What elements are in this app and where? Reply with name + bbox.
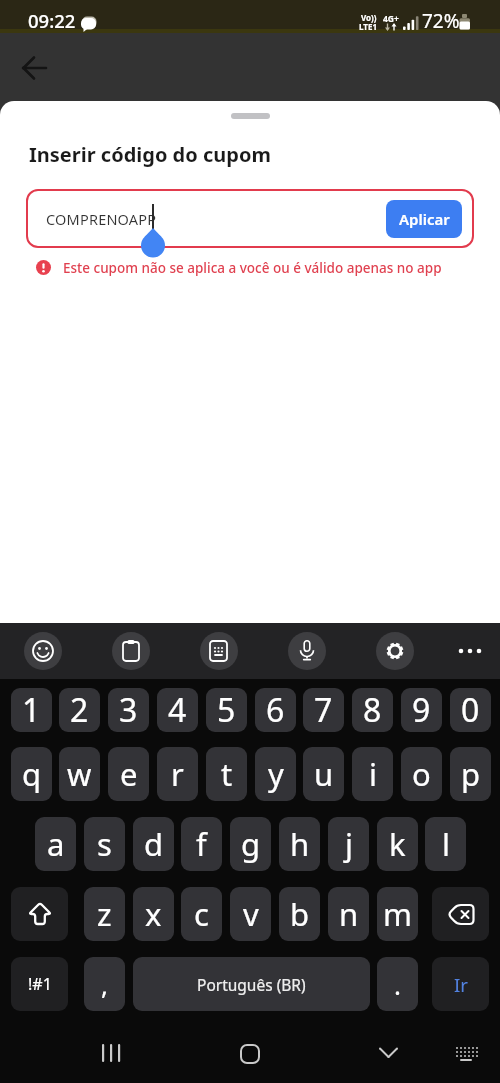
staticText: z	[97, 893, 112, 935]
staticText: o	[412, 753, 431, 795]
staticText: 5	[217, 688, 236, 732]
staticText: i	[369, 753, 377, 795]
staticText: h	[290, 823, 310, 865]
staticText: COMPRENOAPP	[46, 209, 157, 229]
staticText: p	[461, 753, 481, 795]
staticText: y	[268, 753, 284, 795]
staticText: 4G+	[383, 13, 399, 25]
staticText: 9	[412, 688, 431, 732]
staticText: 1	[22, 688, 41, 732]
staticText: n	[339, 893, 359, 935]
staticText: 72%	[422, 8, 460, 34]
staticText: Ir	[454, 972, 468, 997]
staticText: ,	[101, 967, 108, 1002]
staticText: 2	[70, 688, 89, 732]
staticText: 4	[168, 688, 187, 732]
staticText: Inserir código do cupom	[29, 141, 271, 168]
staticText: Vo))	[361, 12, 377, 23]
staticText: b	[290, 893, 310, 935]
staticText: 3	[119, 688, 138, 732]
staticText: LTE1	[359, 21, 377, 32]
staticText: !#1	[28, 973, 52, 995]
staticText: m	[383, 893, 412, 935]
staticText: f	[196, 823, 207, 865]
staticText: 6	[266, 688, 285, 732]
staticText: r	[171, 753, 184, 795]
staticText: u	[314, 753, 334, 795]
staticText: w	[67, 753, 92, 795]
staticText: a	[47, 823, 65, 865]
staticText: k	[389, 823, 406, 865]
staticText: .	[394, 967, 401, 1002]
staticText: s	[97, 823, 112, 865]
staticText: v	[243, 893, 259, 935]
staticText: j	[345, 823, 353, 865]
staticText: 8	[363, 688, 382, 732]
staticText: Este cupom não se aplica a você ou é vál…	[63, 259, 442, 277]
staticText: 7	[314, 688, 333, 732]
staticText: q	[22, 753, 42, 795]
staticText: d	[144, 823, 164, 865]
staticText: l	[442, 823, 450, 865]
staticText: x	[145, 893, 162, 935]
staticText: 0	[461, 688, 480, 732]
staticText: g	[241, 823, 261, 865]
staticText: Português (BR)	[197, 974, 306, 995]
staticText: e	[120, 753, 138, 795]
staticText: Aplicar	[399, 209, 450, 229]
staticText: 09:22	[28, 8, 76, 33]
staticText: t	[221, 753, 233, 795]
staticText: c	[194, 893, 209, 935]
